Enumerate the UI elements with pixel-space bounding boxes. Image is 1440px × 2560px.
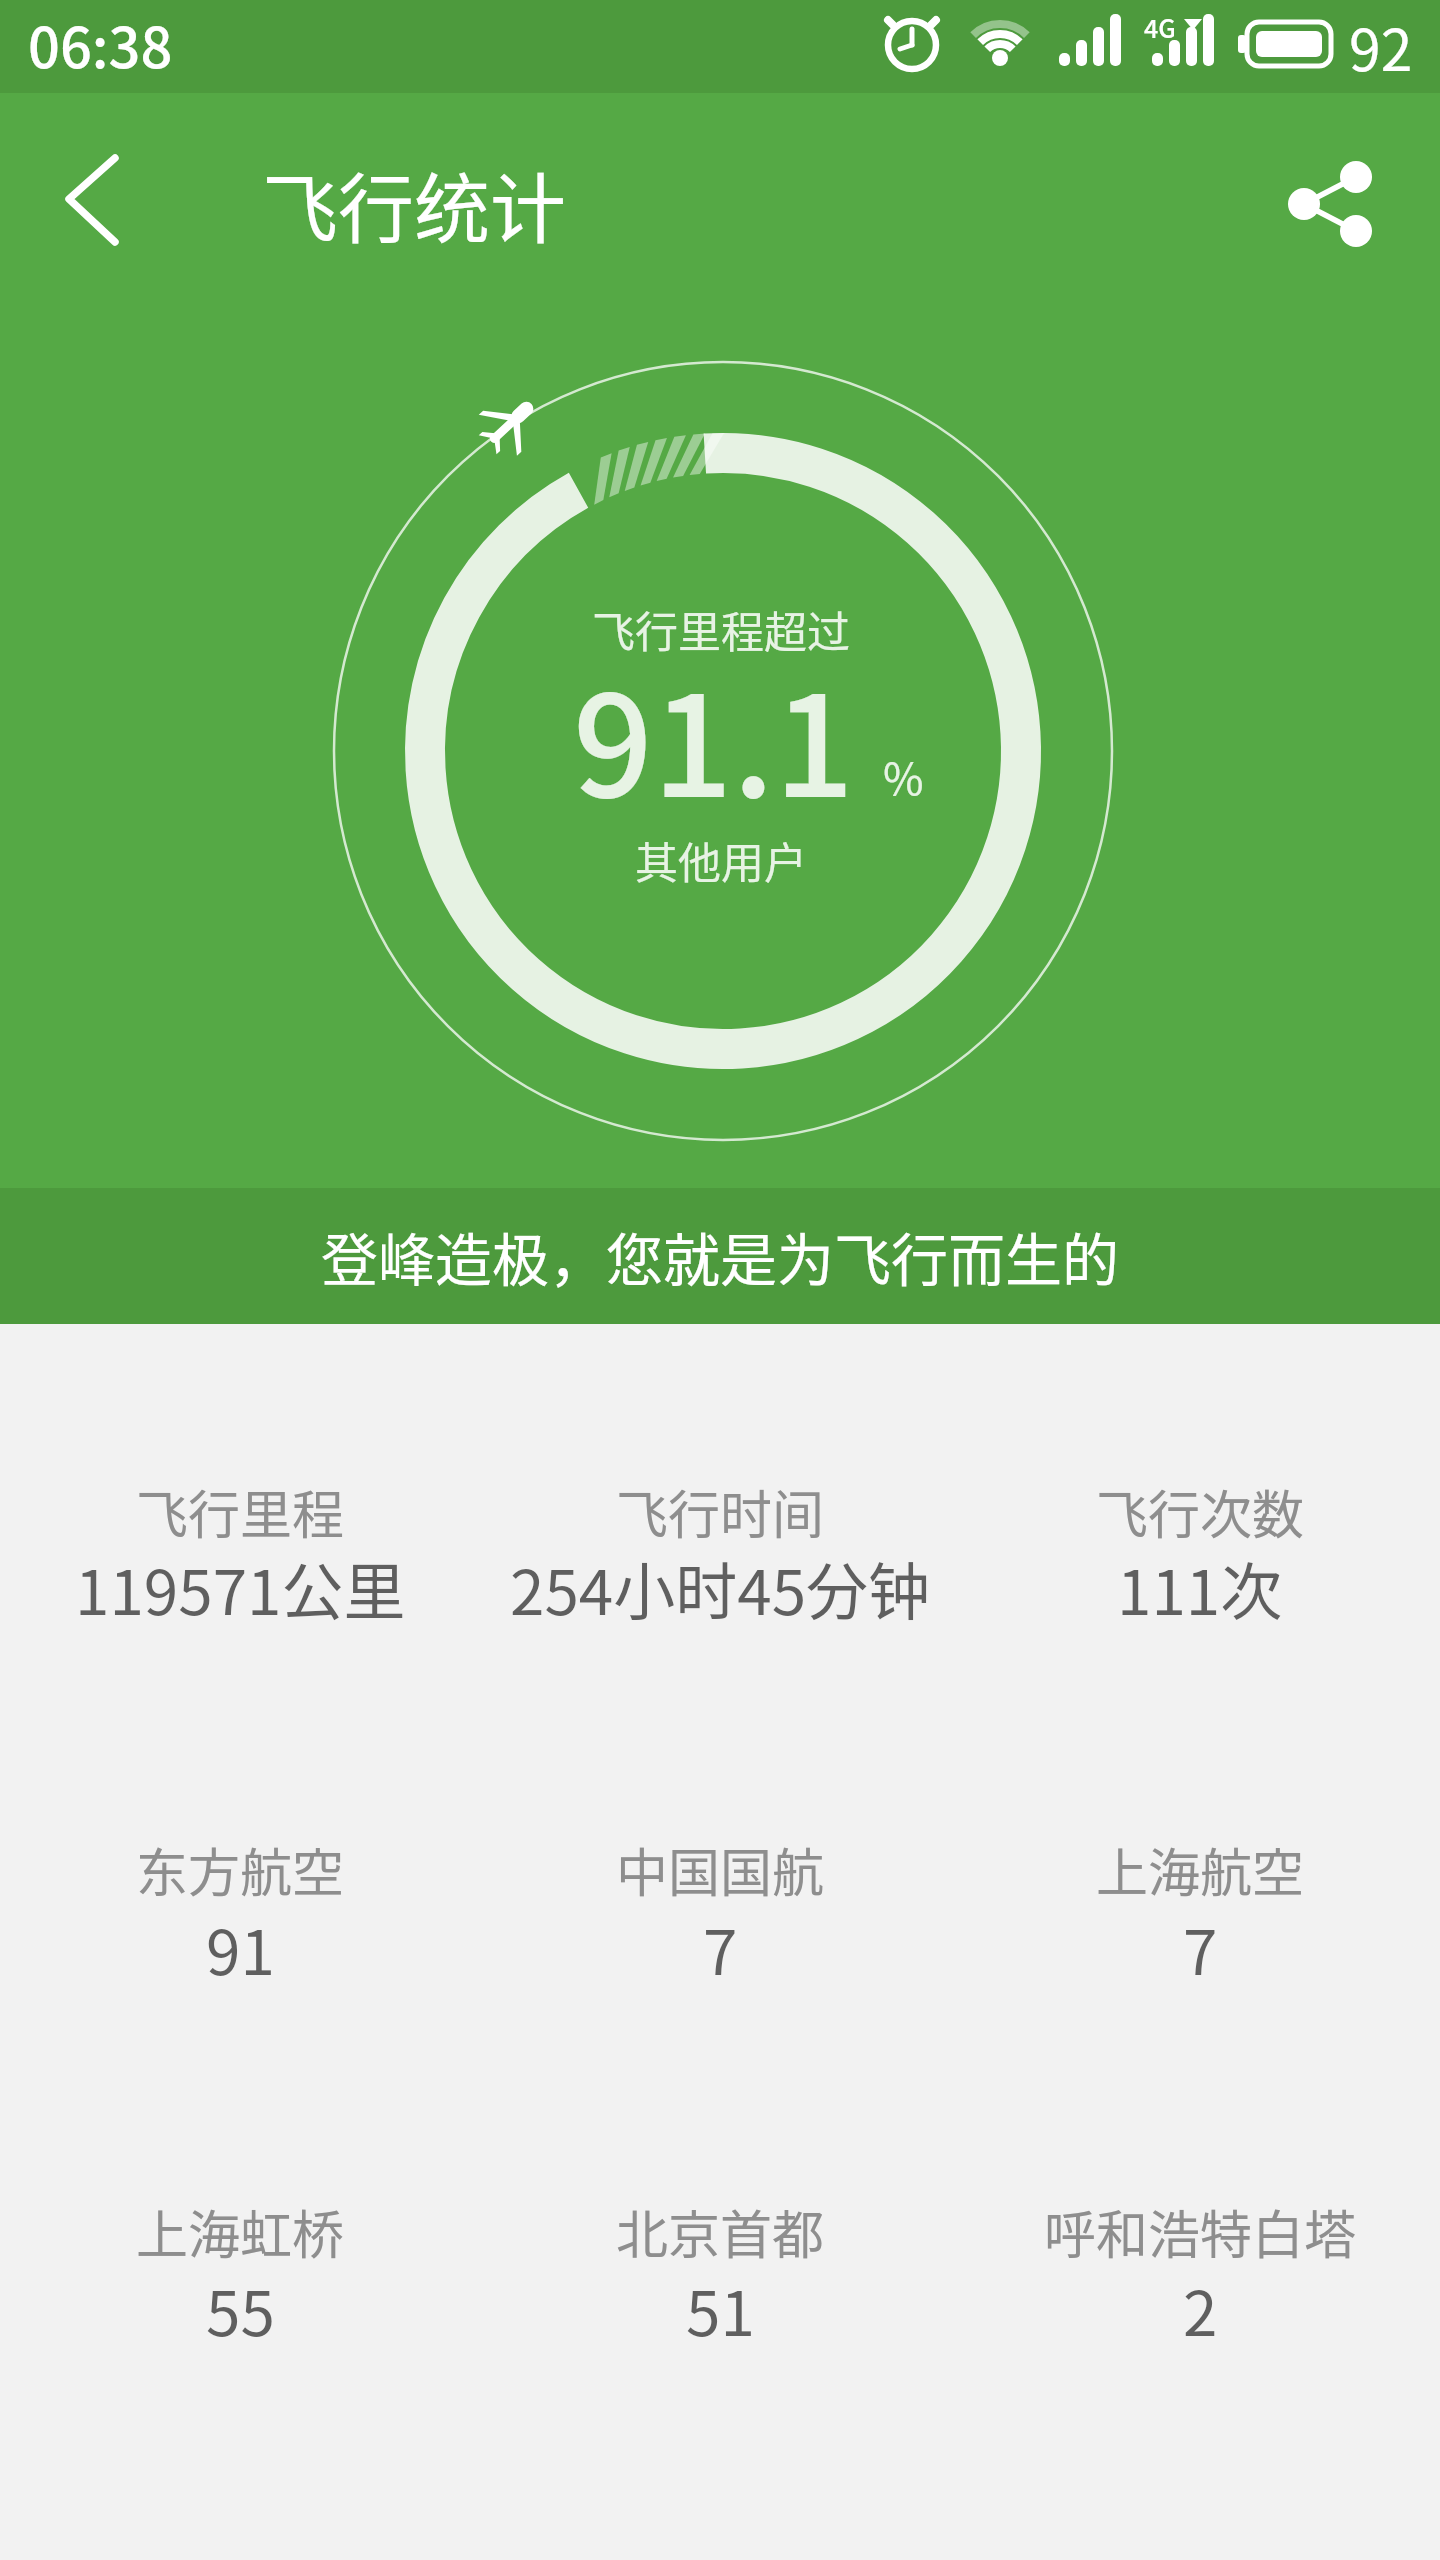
staticText: 上海虹桥 xyxy=(136,2194,345,2269)
staticText: 51 xyxy=(686,2264,755,2354)
staticText: 111次 xyxy=(1117,1543,1283,1633)
button[interactable] xyxy=(25,131,160,266)
staticText: 飞行里程超过 xyxy=(592,598,850,660)
staticText: 4G xyxy=(1144,9,1176,45)
staticText: 飞行次数 xyxy=(1096,1474,1305,1549)
staticText: 登峰造极，您就是为飞行而生的 xyxy=(321,1215,1119,1298)
staticText: 7 xyxy=(1183,1903,1218,1993)
staticText: 119571公里 xyxy=(75,1543,406,1633)
staticText: 91 xyxy=(206,1903,275,1993)
staticText: 呼和浩特白塔 xyxy=(1044,2194,1357,2269)
button[interactable] xyxy=(1268,135,1408,275)
staticText: 其他用户 xyxy=(635,829,807,891)
staticText: 飞行统计 xyxy=(262,149,566,249)
staticText: 东方航空 xyxy=(136,1832,345,1907)
staticText: 2 xyxy=(1183,2264,1218,2354)
staticText: % xyxy=(883,744,924,808)
staticText: 中国国航 xyxy=(616,1832,825,1907)
staticText: 92 xyxy=(1349,5,1413,85)
staticText: 55 xyxy=(206,2264,275,2354)
staticText: 上海航空 xyxy=(1096,1832,1305,1907)
staticText: 飞行时间 xyxy=(616,1474,825,1549)
staticText: 91.1 xyxy=(573,635,855,838)
staticText: 北京首都 xyxy=(616,2194,825,2269)
staticText: 254小时45分钟 xyxy=(510,1543,931,1633)
staticText: 飞行里程 xyxy=(136,1474,345,1549)
staticText: 06:38 xyxy=(28,3,173,83)
staticText: 7 xyxy=(703,1903,738,1993)
